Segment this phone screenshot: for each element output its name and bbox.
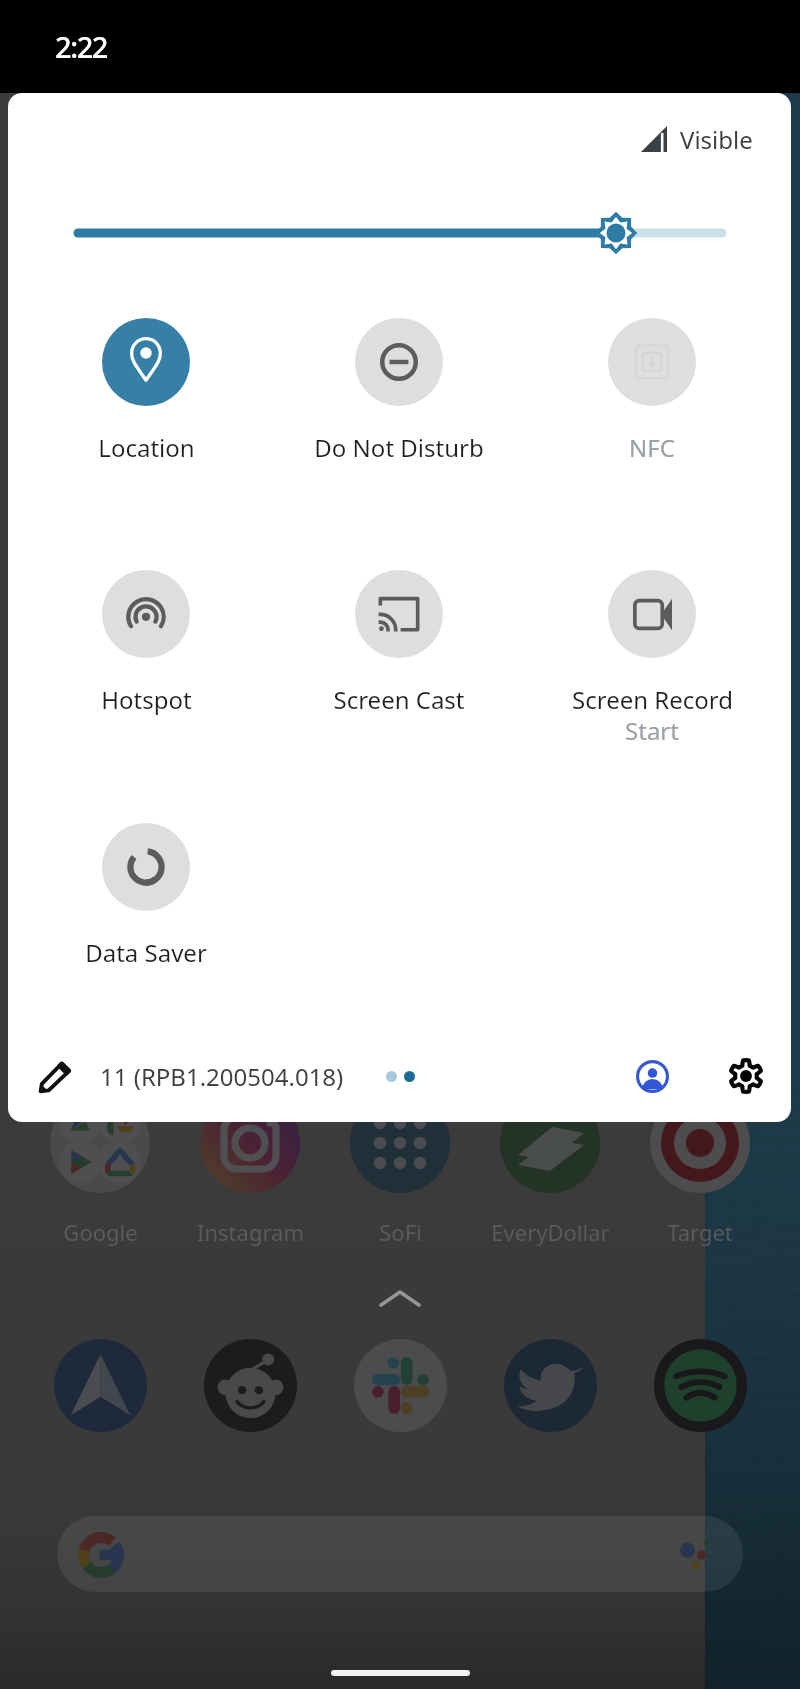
staticText: Do Not Disturb (314, 431, 484, 464)
staticText: EveryDollar (491, 1217, 610, 1247)
staticText: Screen Record (572, 683, 733, 716)
button[interactable]: Brightness (8, 203, 791, 263)
button[interactable]: Do Not Disturb (289, 318, 509, 464)
staticText: Instagram (197, 1217, 304, 1247)
button[interactable]: Screen Cast (289, 570, 509, 716)
button[interactable]: Data Saver (36, 823, 256, 969)
staticText: NFC (629, 431, 675, 464)
button[interactable]: SoFi (350, 1093, 450, 1193)
button[interactable]: NFC (542, 318, 762, 464)
button[interactable]: App (204, 1339, 297, 1432)
staticText: Data Saver (85, 936, 207, 969)
staticText: Location (98, 431, 195, 464)
button[interactable]: Hotspot (36, 570, 256, 716)
staticText: Google (63, 1217, 138, 1247)
button[interactable]: Instagram (200, 1093, 300, 1193)
button[interactable]: Settings (716, 1046, 776, 1106)
staticText: Screen Cast (333, 683, 465, 716)
button[interactable]: App (54, 1339, 147, 1432)
button[interactable]: Search (57, 1516, 743, 1592)
staticText: SoFi (379, 1217, 422, 1247)
staticText: 11 (RPB1.200504.018) (100, 1060, 344, 1093)
button[interactable]: Screen Record (542, 570, 762, 749)
staticText: Visible (680, 123, 753, 156)
button[interactable]: Location (36, 318, 256, 464)
staticText: 2:22 (55, 27, 108, 66)
button[interactable]: App (504, 1339, 597, 1432)
button[interactable]: Google (50, 1093, 150, 1193)
staticText: Start (625, 714, 679, 747)
button[interactable]: User account (622, 1046, 682, 1106)
button[interactable]: Target (650, 1093, 750, 1193)
button[interactable]: App (354, 1339, 447, 1432)
button[interactable]: Edit tiles (25, 1046, 85, 1106)
staticText: Target (667, 1217, 733, 1247)
staticText: Hotspot (101, 683, 192, 716)
button[interactable]: EveryDollar (500, 1093, 600, 1193)
button[interactable]: App (654, 1339, 747, 1432)
